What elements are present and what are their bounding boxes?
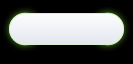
button[interactable]: Action — [9, 13, 124, 45]
